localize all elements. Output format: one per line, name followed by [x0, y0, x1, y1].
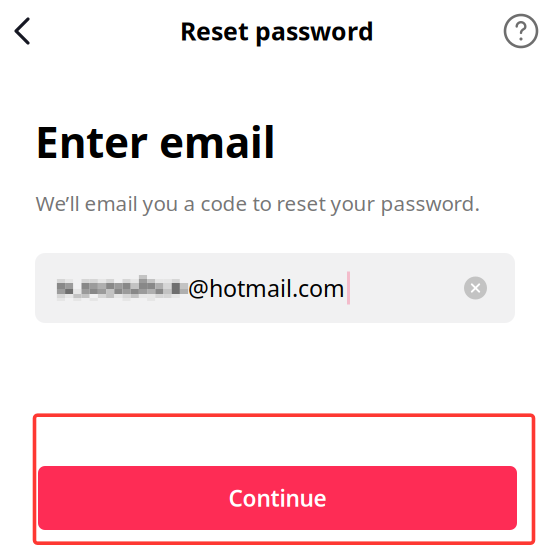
staticText: Enter email	[35, 113, 276, 170]
button[interactable]: Back	[0, 8, 44, 54]
button[interactable]: Clear text	[464, 276, 487, 299]
staticText: Reset password	[180, 14, 374, 48]
staticText: Continue	[228, 483, 326, 513]
button[interactable]: Continue	[38, 466, 517, 530]
button[interactable]: Help	[499, 8, 543, 54]
staticText: We’ll email you a code to reset your pas…	[35, 189, 480, 217]
staticText: @hotmail.com	[188, 272, 345, 304]
button[interactable]: Email address	[35, 253, 515, 323]
